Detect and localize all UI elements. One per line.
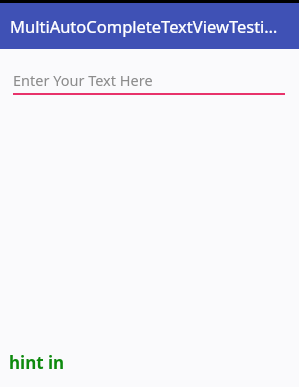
staticText: MultiAutoCompleteTextViewTesti… xyxy=(10,15,278,37)
staticText: Enter Your Text Here xyxy=(13,70,153,90)
button[interactable]: MultiAutoCompleteTextViewTesti… xyxy=(0,3,299,49)
staticText: hint in MultiAutoCompleteTextView xyxy=(9,351,290,374)
button[interactable]: Enter Your Text Here xyxy=(13,69,285,95)
